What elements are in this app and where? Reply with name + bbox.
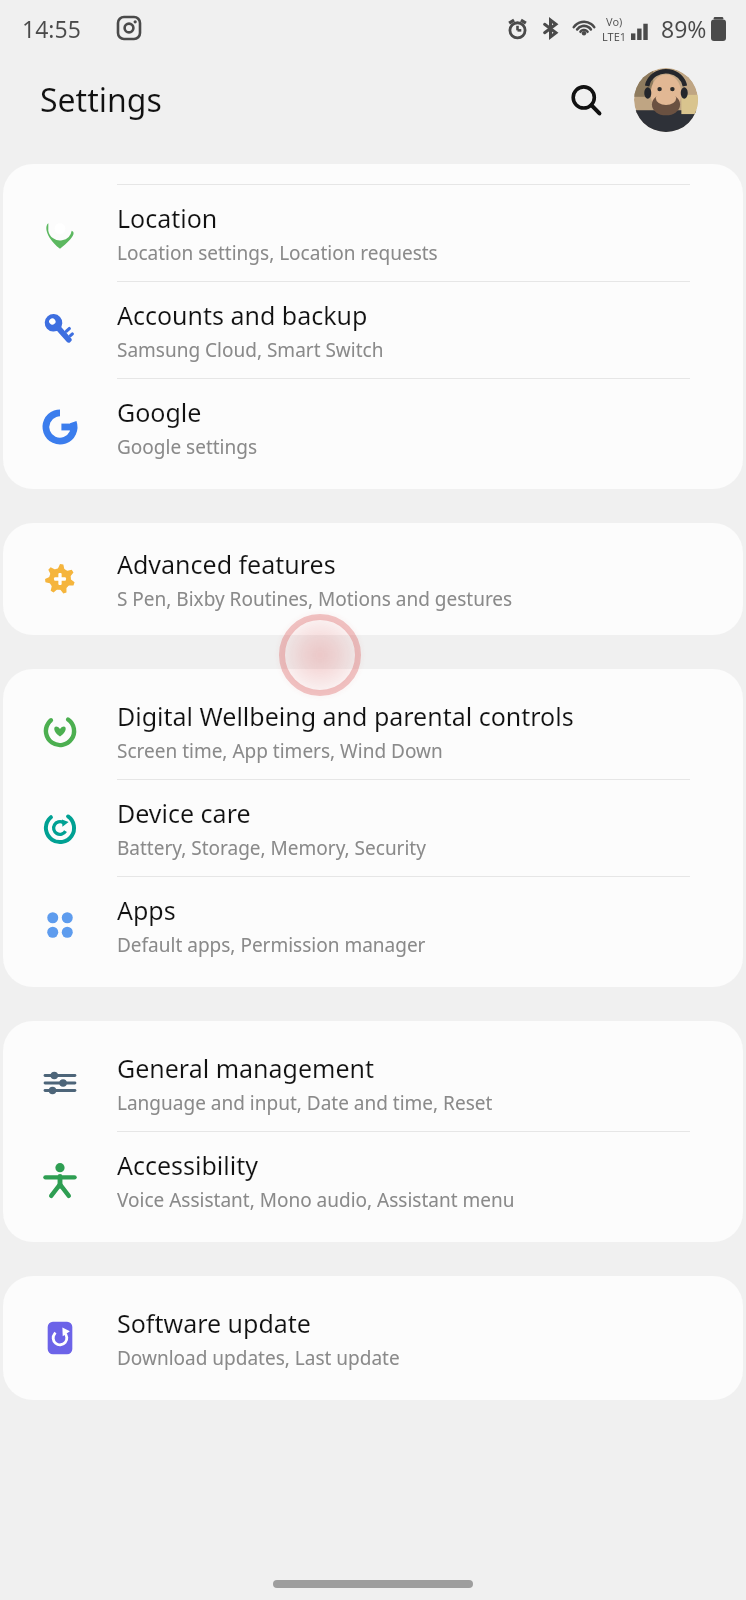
button[interactable]: Software update	[3, 1290, 743, 1386]
staticText: Device care	[117, 796, 251, 830]
staticText: Digital Wellbeing and parental controls	[117, 699, 574, 733]
staticText: Download updates, Last update	[117, 1345, 400, 1371]
staticText: Voice Assistant, Mono audio, Assistant m…	[117, 1187, 515, 1213]
staticText: Accounts and backup	[117, 298, 368, 332]
button[interactable]: Google	[3, 379, 743, 475]
staticText: Battery, Storage, Memory, Security	[117, 835, 426, 861]
button[interactable]: Device care	[3, 780, 743, 876]
staticText: S Pen, Bixby Routines, Motions and gestu…	[117, 586, 513, 612]
staticText: Screen time, App timers, Wind Down	[117, 738, 443, 764]
staticText: Language and input, Date and time, Reset	[117, 1090, 493, 1116]
staticText: Accessibility	[117, 1148, 258, 1182]
button[interactable]: Accounts and backup	[3, 282, 743, 378]
staticText: Settings	[40, 78, 162, 122]
button[interactable]: Advanced features	[3, 531, 743, 627]
staticText: Apps	[117, 893, 176, 927]
button[interactable]: General management	[3, 1035, 743, 1131]
button[interactable]: Apps	[3, 877, 743, 973]
staticText: Vo)	[606, 14, 623, 29]
staticText: Advanced features	[117, 547, 336, 581]
staticText: Google settings	[117, 434, 258, 460]
button[interactable]: Accessibility	[3, 1132, 743, 1228]
button[interactable]: Search	[560, 74, 612, 126]
staticText: LTE1	[602, 29, 627, 44]
staticText: Default apps, Permission manager	[117, 932, 426, 958]
staticText: 89%	[661, 13, 707, 44]
staticText: Software update	[117, 1306, 311, 1340]
button[interactable]: Profile	[634, 68, 698, 132]
staticText: 14:55	[22, 13, 81, 44]
staticText: Location settings, Location requests	[117, 240, 438, 266]
staticText: Samsung Cloud, Smart Switch	[117, 337, 384, 363]
button[interactable]: Digital Wellbeing and parental controls	[3, 683, 743, 779]
staticText: Location	[117, 201, 218, 235]
button[interactable]: Location	[3, 185, 743, 281]
staticText: General management	[117, 1051, 374, 1085]
staticText: Google	[117, 395, 202, 429]
